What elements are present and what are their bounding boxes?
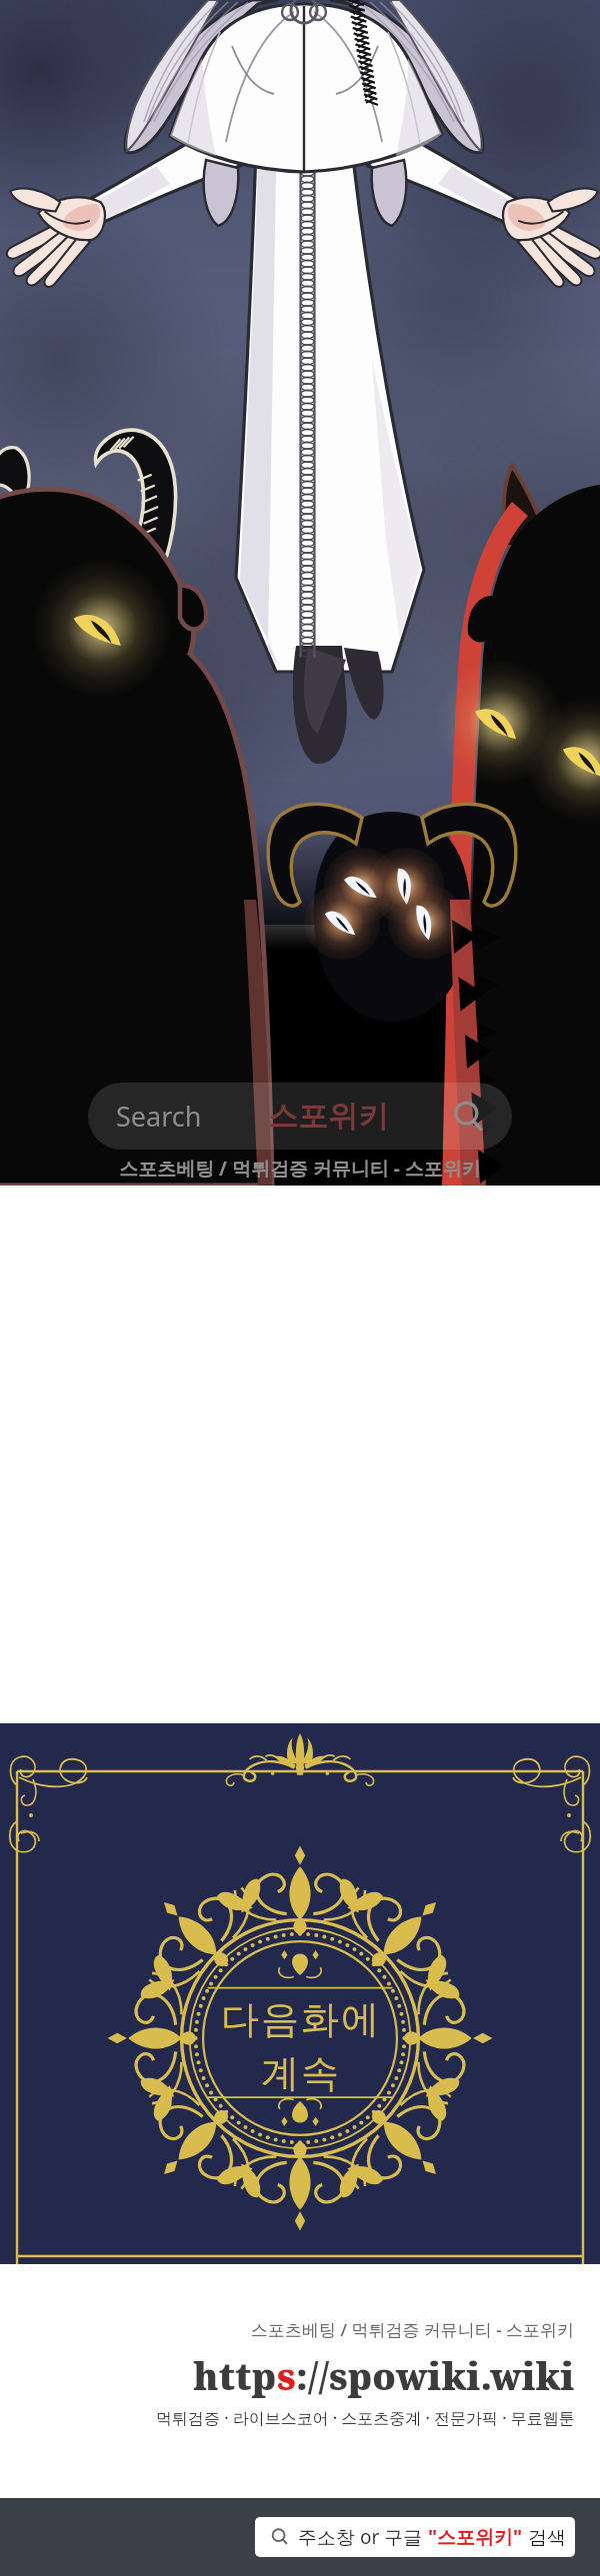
staticText: "스포위키" — [428, 2524, 523, 2550]
staticText: 먹튀검증 · 라이브스코어 · 스포츠중계 · 전문가픽 · 무료웹툰 — [156, 2407, 575, 2429]
staticText: 스포위키 — [268, 1098, 388, 1136]
staticText: http — [193, 2350, 277, 2400]
staticText: 스포츠베팅 / 먹튀검증 커뮤니티 - 스포위키 — [119, 1156, 481, 1182]
staticText: 주소창 or 구글 — [298, 2524, 428, 2550]
staticText: 다음화에 — [220, 1995, 380, 2043]
button[interactable]: Search — [255, 2517, 575, 2557]
staticText: Search — [116, 1098, 202, 1135]
staticText: 계속 — [260, 2049, 340, 2097]
other: Search — [271, 2528, 289, 2546]
other: Search — [452, 1100, 486, 1134]
button[interactable]: Search — [88, 1083, 512, 1150]
staticText: s — [277, 2350, 296, 2400]
staticText: ://spowiki.wiki — [296, 2350, 575, 2400]
staticText: 검색 — [523, 2524, 566, 2550]
staticText: 스포츠베팅 / 먹튀검증 커뮤니티 - 스포위키 — [251, 2318, 575, 2341]
